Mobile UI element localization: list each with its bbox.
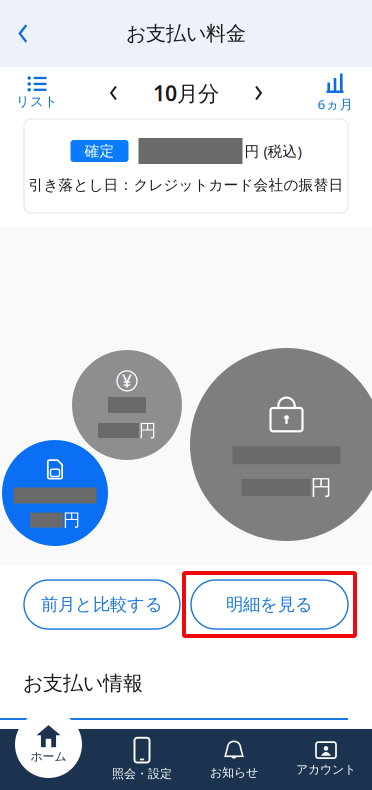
staticText: 円 [63,509,80,531]
staticText: お支払い料金 [126,21,246,46]
staticText: アカウント [296,762,356,777]
button[interactable]: ホーム [15,711,82,778]
staticText: 円 [310,474,331,500]
staticText: 引き落とし日：クレジットカード会社の振替日 [28,176,343,194]
staticText: お支払い情報 [23,671,143,696]
staticText: 明細を見る [226,594,313,615]
button[interactable]: 照会・設定 [96,729,188,790]
staticText: ¥ [122,369,132,392]
button[interactable]: 前の月 [98,73,128,113]
button[interactable]: お知らせ [188,729,280,790]
staticText: リスト [16,93,58,110]
staticText: 前月と比較する [41,594,163,615]
staticText: 照会・設定 [112,766,172,781]
button[interactable]: 前月と比較する [24,580,180,629]
button[interactable]: 次の月 [243,73,273,113]
staticText: 円 (税込) [244,141,301,161]
button[interactable]: 明細を見る [184,573,355,636]
staticText: 確定 [84,142,114,160]
staticText: ホーム [30,749,66,764]
button[interactable]: 6ヵ月 [298,67,372,119]
button[interactable]: リスト [0,67,74,119]
staticText: 円 [139,420,156,441]
staticText: 10月分 [153,79,219,107]
staticText: お知らせ [210,765,258,780]
staticText: 6ヵ月 [317,95,352,113]
button[interactable]: 戻る [0,2,46,64]
button[interactable]: アカウント [280,729,372,790]
